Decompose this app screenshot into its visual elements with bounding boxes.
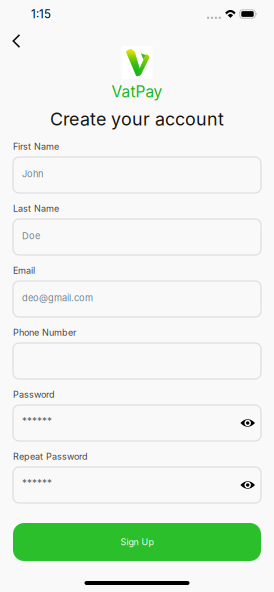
staticText: Sign Up: [120, 537, 153, 547]
staticText: deo@gmail.com: [22, 292, 93, 303]
staticText: Repeat Password: [13, 451, 88, 462]
button[interactable]: Back: [0, 28, 28, 54]
staticText: Doe: [22, 230, 40, 241]
staticText: ******: [22, 477, 52, 489]
button[interactable]: Sign Up: [13, 523, 261, 561]
staticText: Email: [13, 265, 35, 276]
staticText: ******: [22, 415, 52, 427]
staticText: Phone Number: [13, 327, 76, 338]
button[interactable]: Show Repeat Password: [234, 480, 255, 490]
staticText: First Name: [13, 141, 59, 152]
staticText: Create your account: [50, 108, 224, 130]
staticText: VatPay: [111, 82, 162, 101]
staticText: Password: [13, 389, 55, 400]
button[interactable]: Show Password: [234, 418, 255, 428]
staticText: 1:15: [31, 7, 51, 21]
staticText: Last Name: [13, 203, 59, 214]
staticText: John: [22, 168, 43, 179]
